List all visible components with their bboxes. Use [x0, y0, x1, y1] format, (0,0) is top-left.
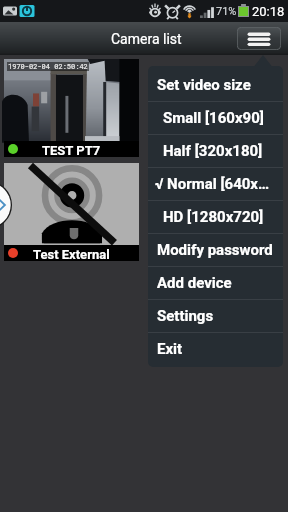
- button[interactable]: Open drawer: [0, 181, 12, 229]
- button[interactable]: √ Normal [640x…: [148, 167, 283, 200]
- button[interactable]: Small [160x90]: [148, 101, 283, 134]
- staticText: TEST PT7: [42, 143, 101, 158]
- staticText: Settings: [157, 307, 214, 325]
- staticText: HD [1280x720]: [163, 208, 264, 226]
- button[interactable]: Modify password: [148, 233, 283, 266]
- button[interactable]: Test External: [4, 163, 139, 261]
- staticText: Modify password: [157, 241, 273, 259]
- staticText: √ Normal [640x…: [155, 175, 270, 193]
- button[interactable]: Exit: [148, 332, 283, 365]
- staticText: Exit: [157, 340, 183, 358]
- button[interactable]: 1970-02-04 02:50:42: [4, 59, 139, 157]
- staticText: Test External: [33, 247, 110, 262]
- button[interactable]: Half [320x180]: [148, 134, 283, 167]
- staticText: Half [320x180]: [163, 142, 263, 160]
- button[interactable]: Settings: [148, 299, 283, 332]
- staticText: 20:18: [252, 4, 285, 19]
- button[interactable]: Add device: [148, 266, 283, 299]
- staticText: Set video size: [157, 76, 251, 94]
- staticText: Camera list: [111, 31, 182, 47]
- staticText: Add device: [157, 274, 232, 292]
- staticText: 71%: [216, 5, 237, 18]
- button[interactable]: More options: [237, 27, 281, 50]
- staticText: 1970-02-04 02:50:42: [8, 62, 88, 71]
- button[interactable]: Set video size: [148, 68, 283, 101]
- staticText: Small [160x90]: [163, 109, 264, 127]
- button[interactable]: HD [1280x720]: [148, 200, 283, 233]
